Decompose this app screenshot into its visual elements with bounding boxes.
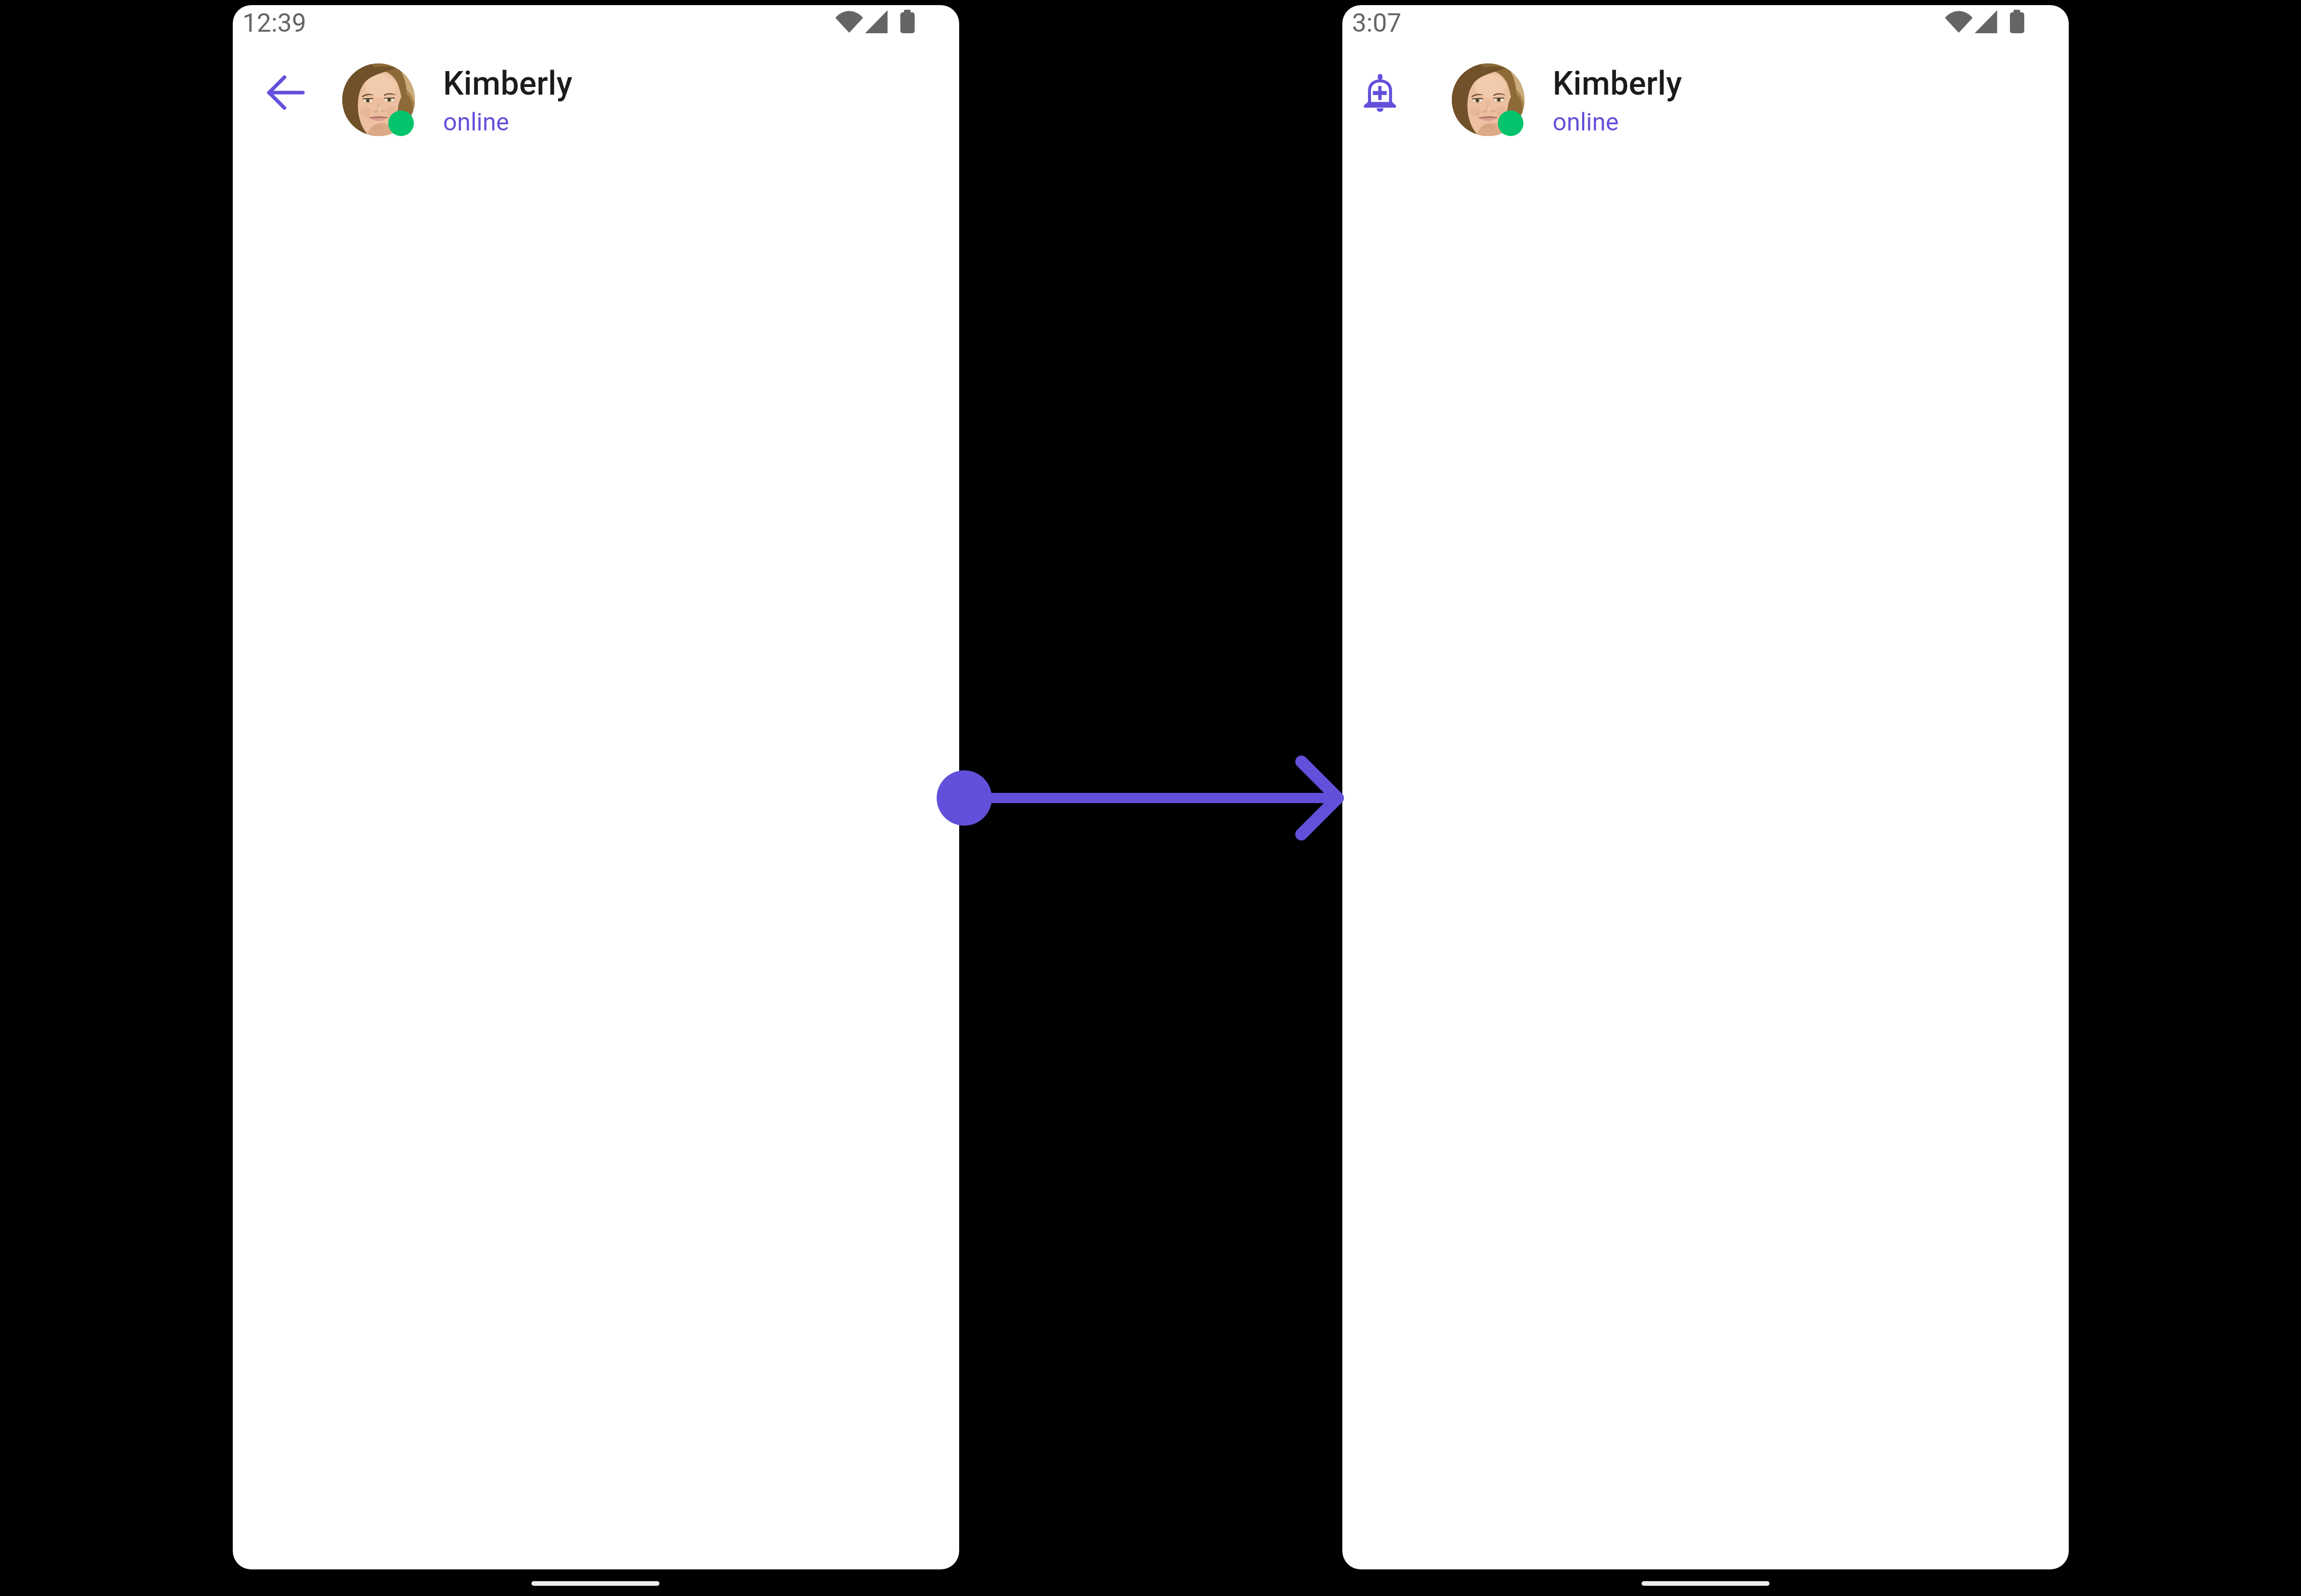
button[interactable]: Kimberly: [338, 59, 852, 142]
staticText: 3:07: [1352, 8, 1402, 38]
staticText: 12:39: [242, 8, 306, 38]
button[interactable]: Add alert: [1342, 64, 1399, 121]
staticText: Kimberly: [443, 64, 572, 103]
button[interactable]: Kimberly: [1448, 59, 1961, 142]
button[interactable]: Back: [244, 64, 300, 121]
staticText: online: [1553, 107, 1619, 136]
staticText: Kimberly: [1553, 64, 1682, 103]
staticText: online: [443, 107, 510, 136]
